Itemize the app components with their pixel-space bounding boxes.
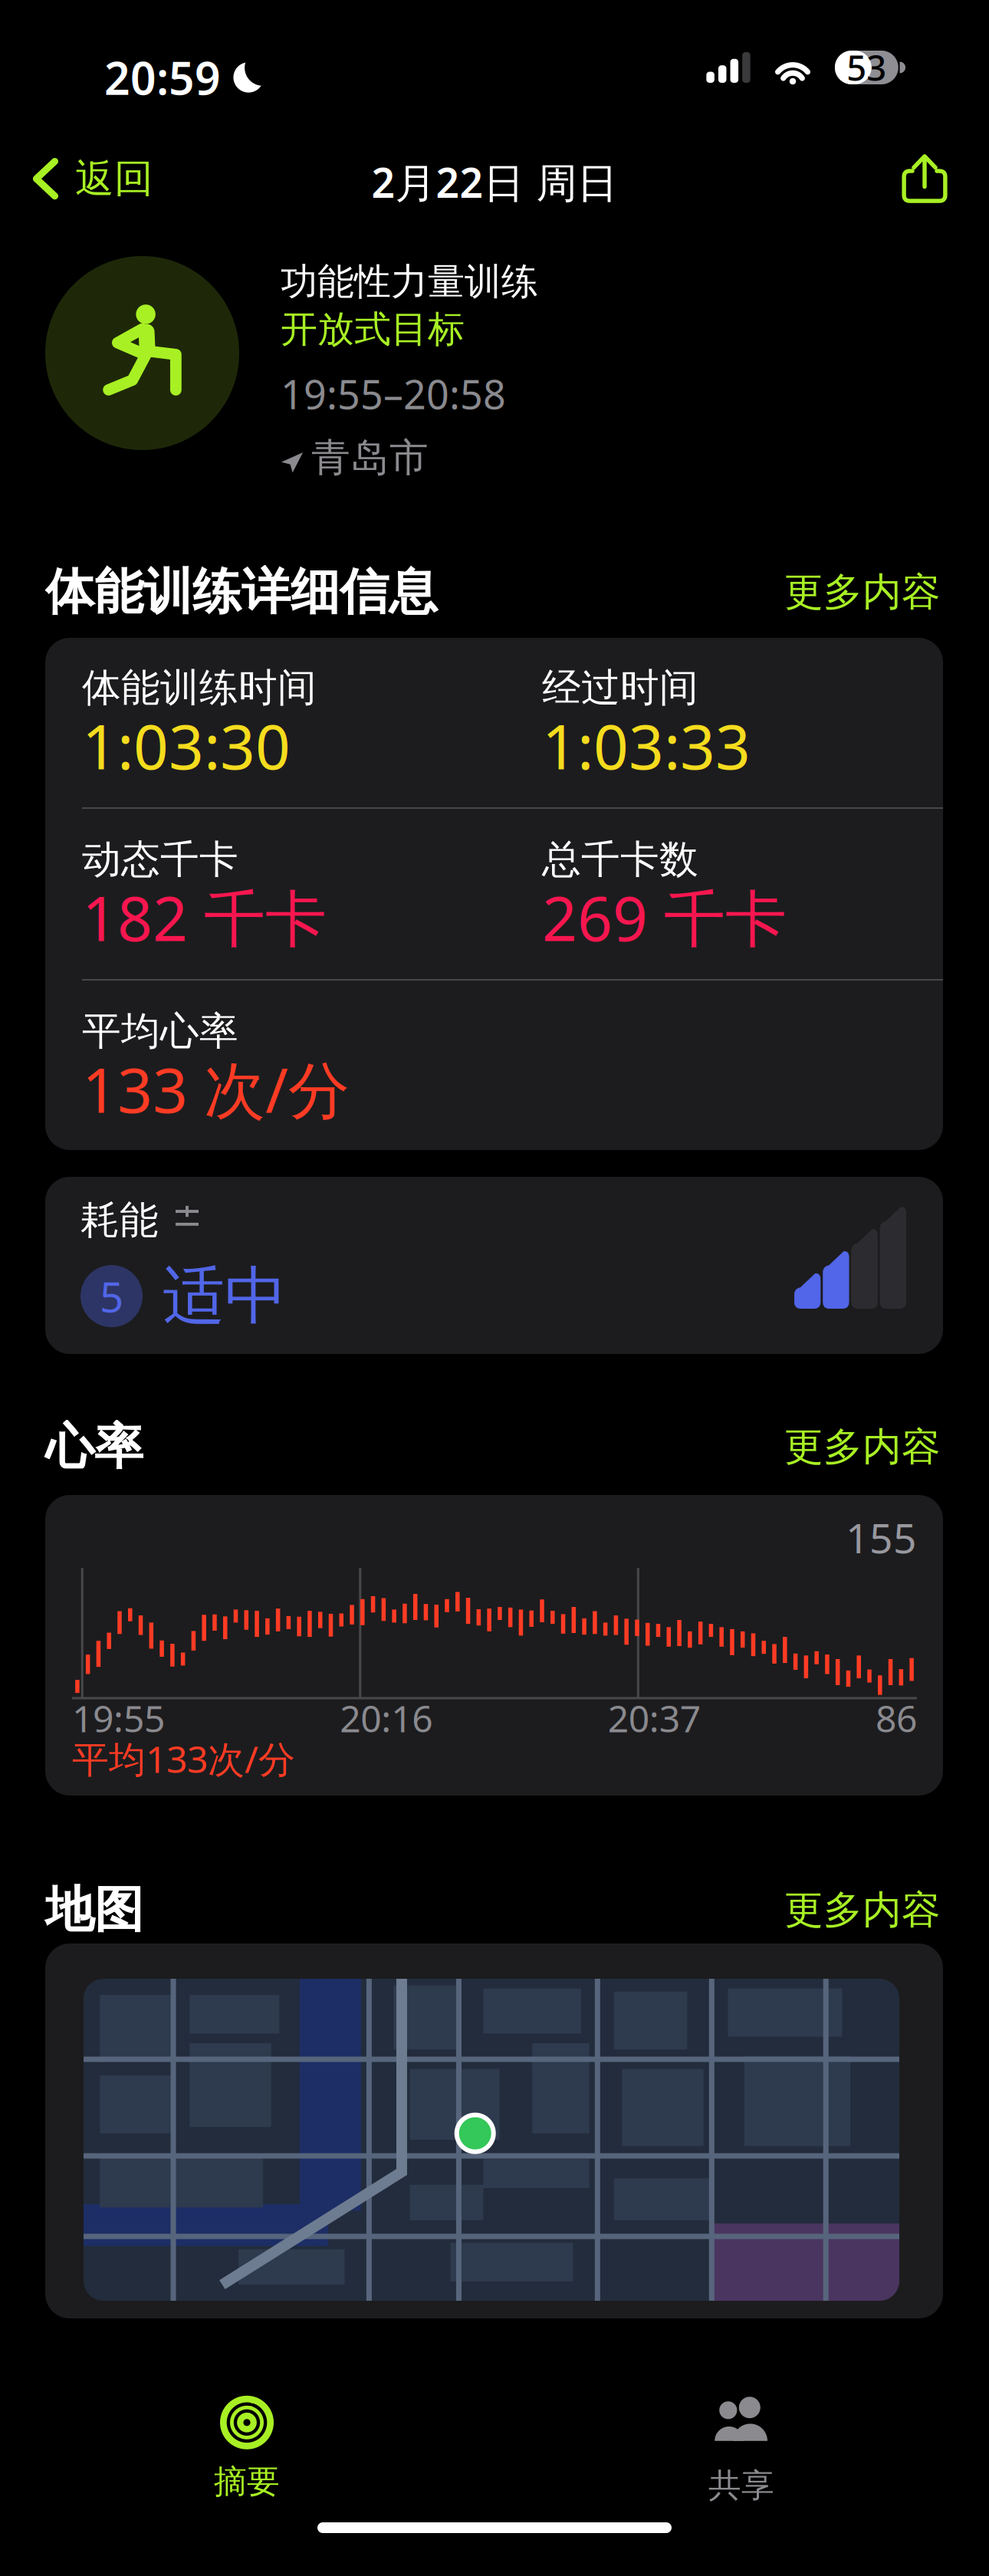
staticText: 共享: [708, 2465, 774, 2506]
staticText: 19:55: [72, 1694, 165, 1742]
staticText: 更多内容: [784, 1423, 941, 1471]
staticText: 平均133次/分: [72, 1734, 295, 1783]
staticText: 体能训练时间: [82, 664, 317, 712]
staticText: 动态千卡: [82, 836, 238, 883]
staticText: 2月22日 周日: [371, 155, 618, 209]
staticText: 53: [847, 44, 886, 91]
button[interactable]: 返回: [21, 143, 164, 215]
staticText: 开放式目标: [281, 307, 465, 352]
staticText: 返回: [75, 155, 153, 203]
staticText: 更多内容: [784, 1886, 941, 1934]
staticText: 心率: [45, 1417, 143, 1477]
staticText: 86: [876, 1694, 917, 1742]
button[interactable]: 更多内容: [784, 568, 941, 616]
staticText: 平均心率: [82, 1007, 238, 1055]
staticText: 功能性力量训练: [281, 259, 538, 304]
staticText: 总千卡数: [542, 836, 698, 883]
staticText: 269 千卡: [542, 876, 787, 958]
staticText: 133 次/分: [82, 1048, 350, 1130]
button[interactable]: 更多内容: [784, 1423, 941, 1471]
staticText: 耗能: [80, 1196, 159, 1244]
staticText: 更多内容: [784, 568, 941, 616]
staticText: 适中: [163, 1258, 287, 1334]
button[interactable]: 共享: [619, 2395, 864, 2502]
staticText: 5: [100, 1268, 123, 1324]
staticText: 体能训练详细信息: [45, 562, 438, 622]
button[interactable]: 分享: [883, 140, 966, 216]
staticText: 地图: [45, 1880, 143, 1940]
staticText: 182 千卡: [82, 876, 327, 958]
staticText: 20:16: [340, 1694, 433, 1742]
staticText: 1:03:33: [542, 705, 751, 786]
staticText: 1:03:30: [82, 705, 291, 786]
staticText: 19:55–20:58: [281, 367, 506, 420]
staticText: 20:59: [104, 48, 221, 107]
staticText: 经过时间: [542, 664, 698, 712]
staticText: 青岛市: [311, 434, 429, 482]
staticText: 155: [846, 1510, 917, 1565]
button[interactable]: 摘要: [124, 2395, 370, 2502]
staticText: 20:37: [608, 1694, 701, 1742]
staticText: 摘要: [214, 2462, 280, 2502]
button[interactable]: 更多内容: [784, 1886, 941, 1934]
